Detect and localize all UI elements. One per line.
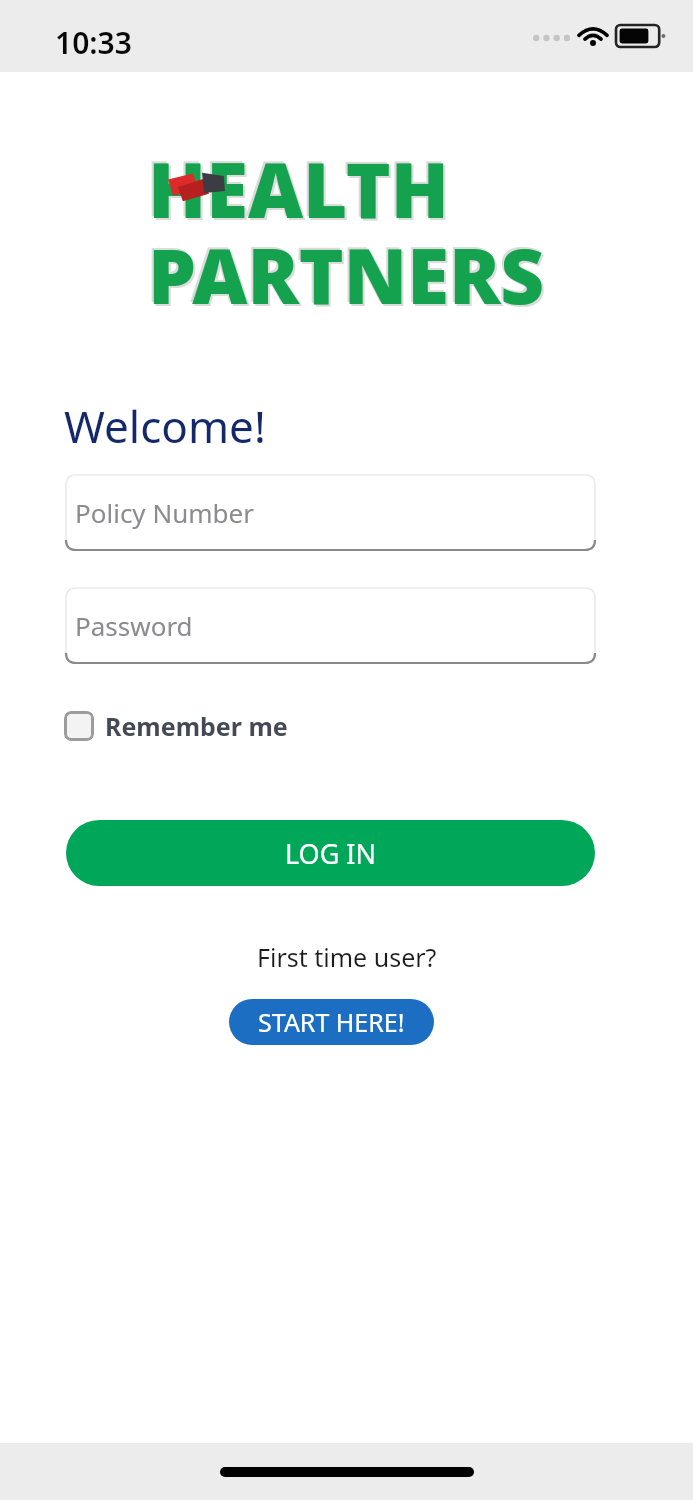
staticText: HEALTH xyxy=(146,135,447,239)
button[interactable]: START HERE! xyxy=(229,999,434,1045)
staticText: First time user? xyxy=(257,940,437,974)
button[interactable]: Policy Number xyxy=(66,475,595,550)
staticText: LOG IN xyxy=(285,835,377,872)
button[interactable]: LOG IN xyxy=(66,820,595,886)
staticText: PARTNERS xyxy=(148,223,545,327)
button[interactable]: Password xyxy=(66,588,595,663)
staticText: HEALTH xyxy=(150,139,451,243)
staticText: START HERE! xyxy=(258,1005,405,1039)
staticText: PARTNERS xyxy=(146,221,543,325)
staticText: Remember me xyxy=(105,709,288,743)
staticText: PARTNERS xyxy=(150,225,547,329)
button[interactable]: Remember me xyxy=(64,707,294,745)
staticText: Welcome! xyxy=(64,396,266,456)
staticText: Password xyxy=(75,608,193,643)
staticText: 10:33 xyxy=(55,22,132,63)
staticText: HEALTH xyxy=(148,137,449,241)
staticText: Policy Number xyxy=(75,495,254,530)
